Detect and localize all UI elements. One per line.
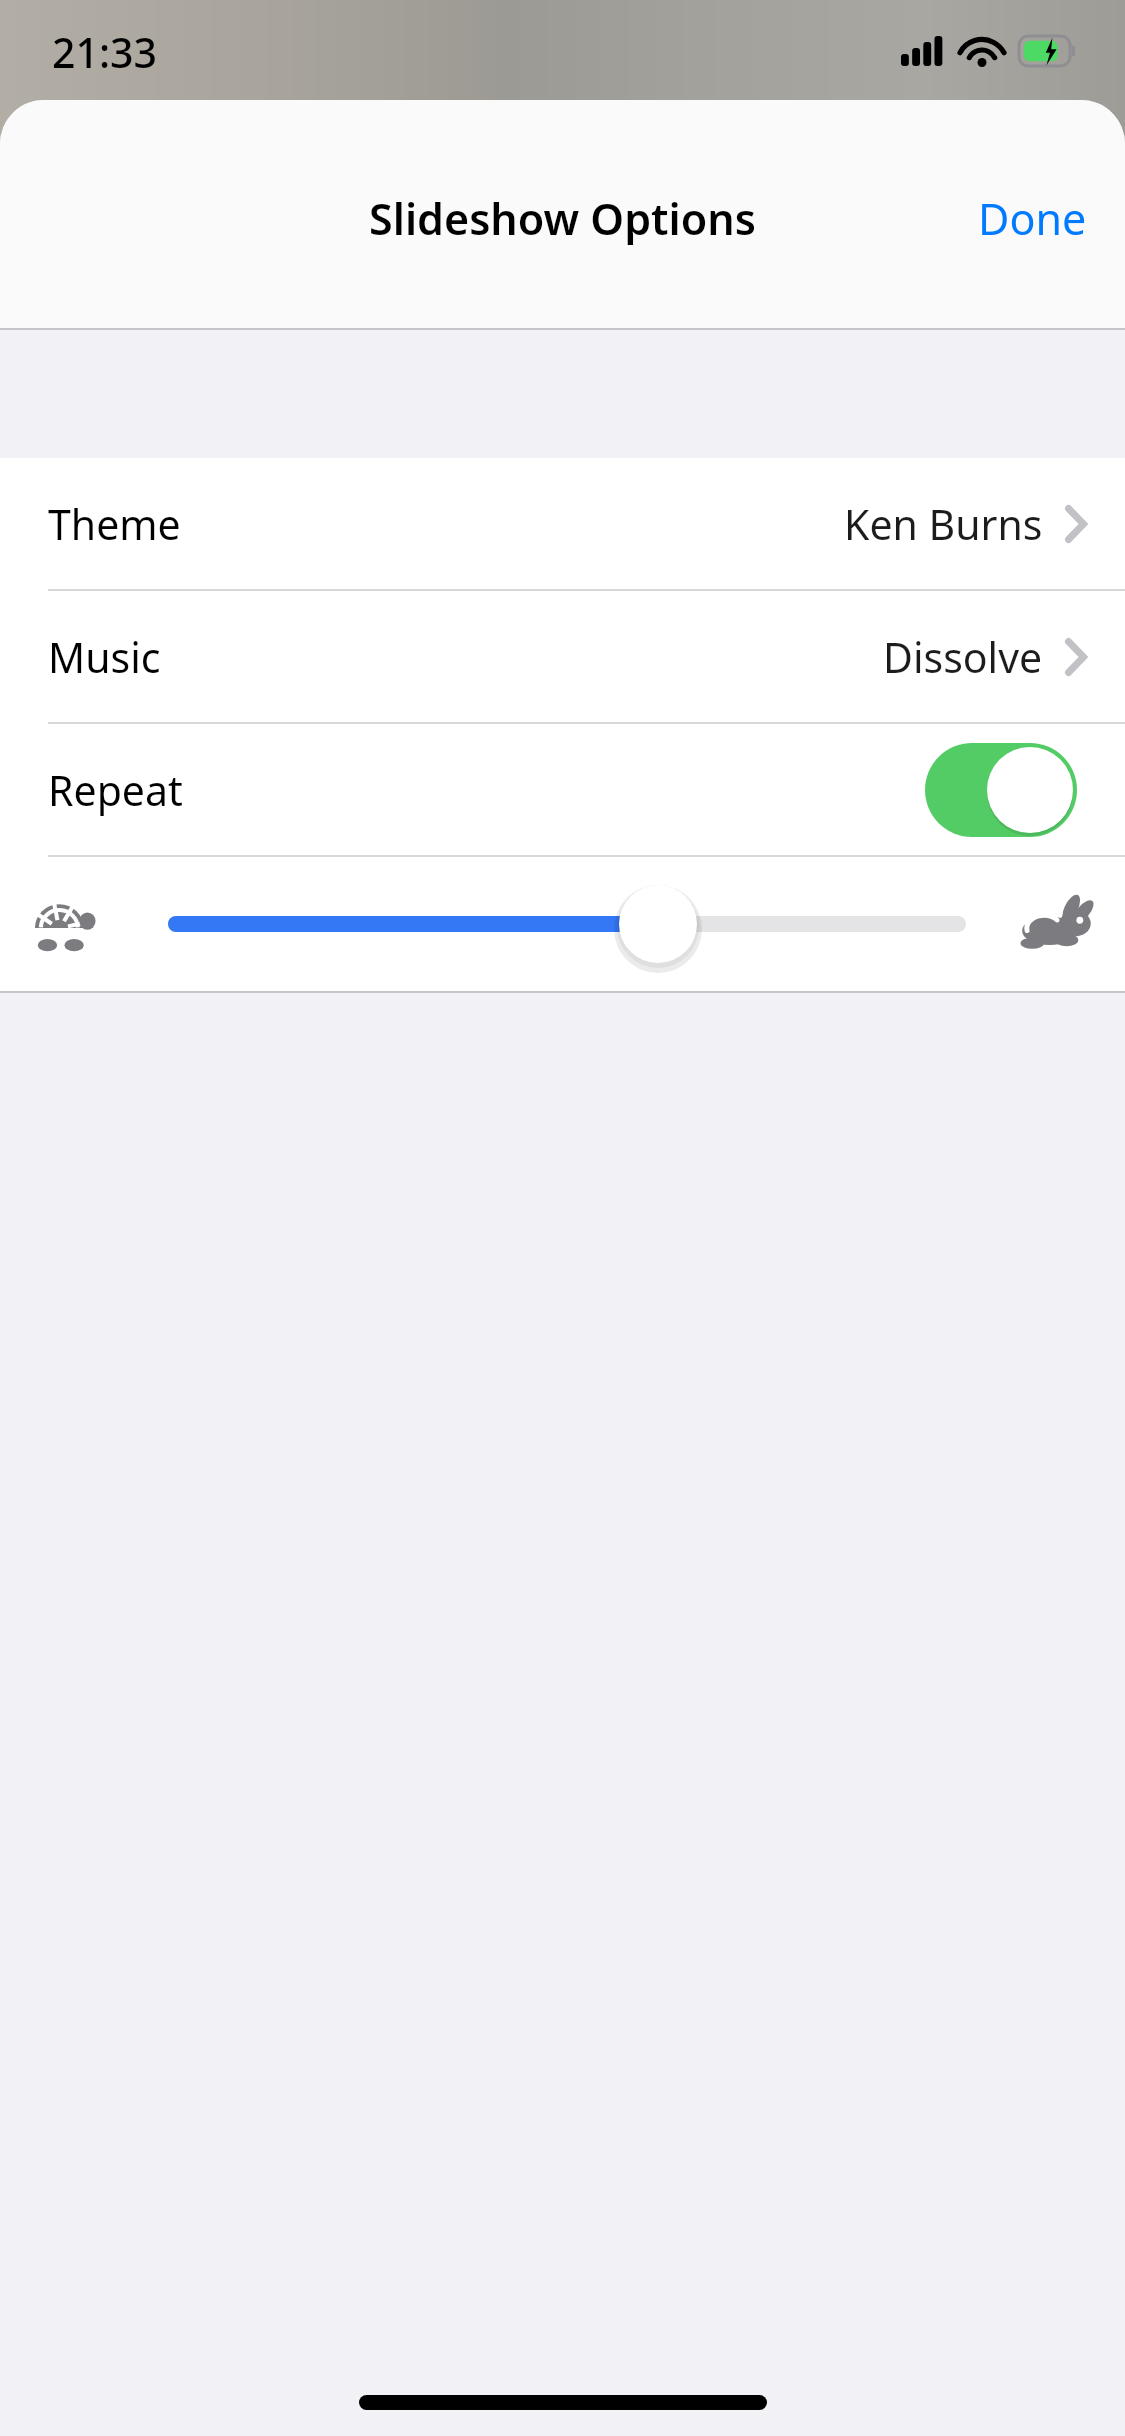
button[interactable]: Theme bbox=[0, 458, 1125, 589]
button[interactable]: Done bbox=[940, 167, 1125, 270]
staticText: Repeat bbox=[48, 762, 183, 818]
staticText: Slideshow Options bbox=[369, 189, 756, 248]
staticText: Theme bbox=[48, 496, 181, 552]
staticText: Done bbox=[978, 189, 1087, 248]
button[interactable]: Slideshow speed bbox=[0, 857, 1125, 991]
button[interactable]: Repeat bbox=[0, 724, 1125, 855]
button[interactable]: Repeat on bbox=[925, 743, 1077, 837]
staticText: Ken Burns bbox=[844, 496, 1043, 552]
staticText: 21:33 bbox=[52, 24, 157, 80]
staticText: Dissolve bbox=[883, 629, 1043, 685]
staticText: Music bbox=[48, 629, 161, 685]
button[interactable]: Music bbox=[0, 591, 1125, 722]
